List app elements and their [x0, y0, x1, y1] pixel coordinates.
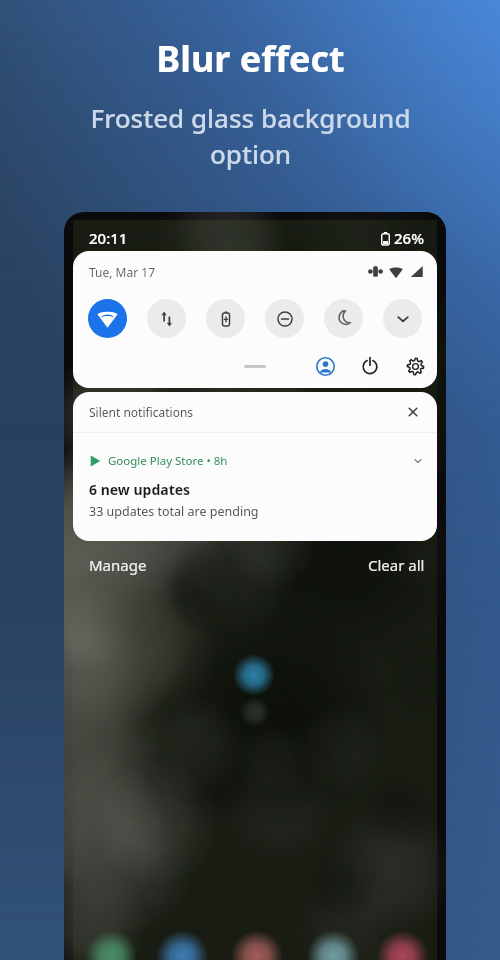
staticText: Manage: [89, 555, 147, 575]
button[interactable]: Night light: [324, 299, 363, 338]
button[interactable]: Manage: [87, 553, 149, 577]
button[interactable]: Dismiss silent notifications: [403, 402, 423, 422]
staticText: Google Play Store • 8h: [108, 453, 228, 469]
button[interactable]: Google Play Store • 8h: [73, 433, 437, 541]
staticText: 20:11: [89, 228, 128, 248]
staticText: 26%: [394, 228, 424, 248]
staticText: 33 updates total are pending: [89, 503, 259, 520]
staticText: Tue, Mar 17: [89, 264, 156, 280]
button[interactable]: Power: [358, 354, 382, 378]
staticText: 6 new updates: [89, 480, 191, 499]
button[interactable]: Mobile data: [147, 299, 186, 338]
button[interactable]: Silent notifications: [73, 392, 437, 432]
button[interactable]: Settings: [403, 354, 427, 378]
staticText: Frosted glass background option: [90, 100, 411, 172]
button[interactable]: Account: [313, 354, 337, 378]
button[interactable]: Do not disturb: [265, 299, 304, 338]
staticText: Silent notifications: [89, 404, 194, 420]
button[interactable]: Clear all: [366, 553, 427, 577]
staticText: Clear all: [368, 555, 425, 575]
button[interactable]: Wi-Fi: [88, 299, 127, 338]
button[interactable]: Battery saver: [206, 299, 245, 338]
staticText: Blur effect: [156, 34, 345, 83]
button[interactable]: Expand: [383, 299, 422, 338]
